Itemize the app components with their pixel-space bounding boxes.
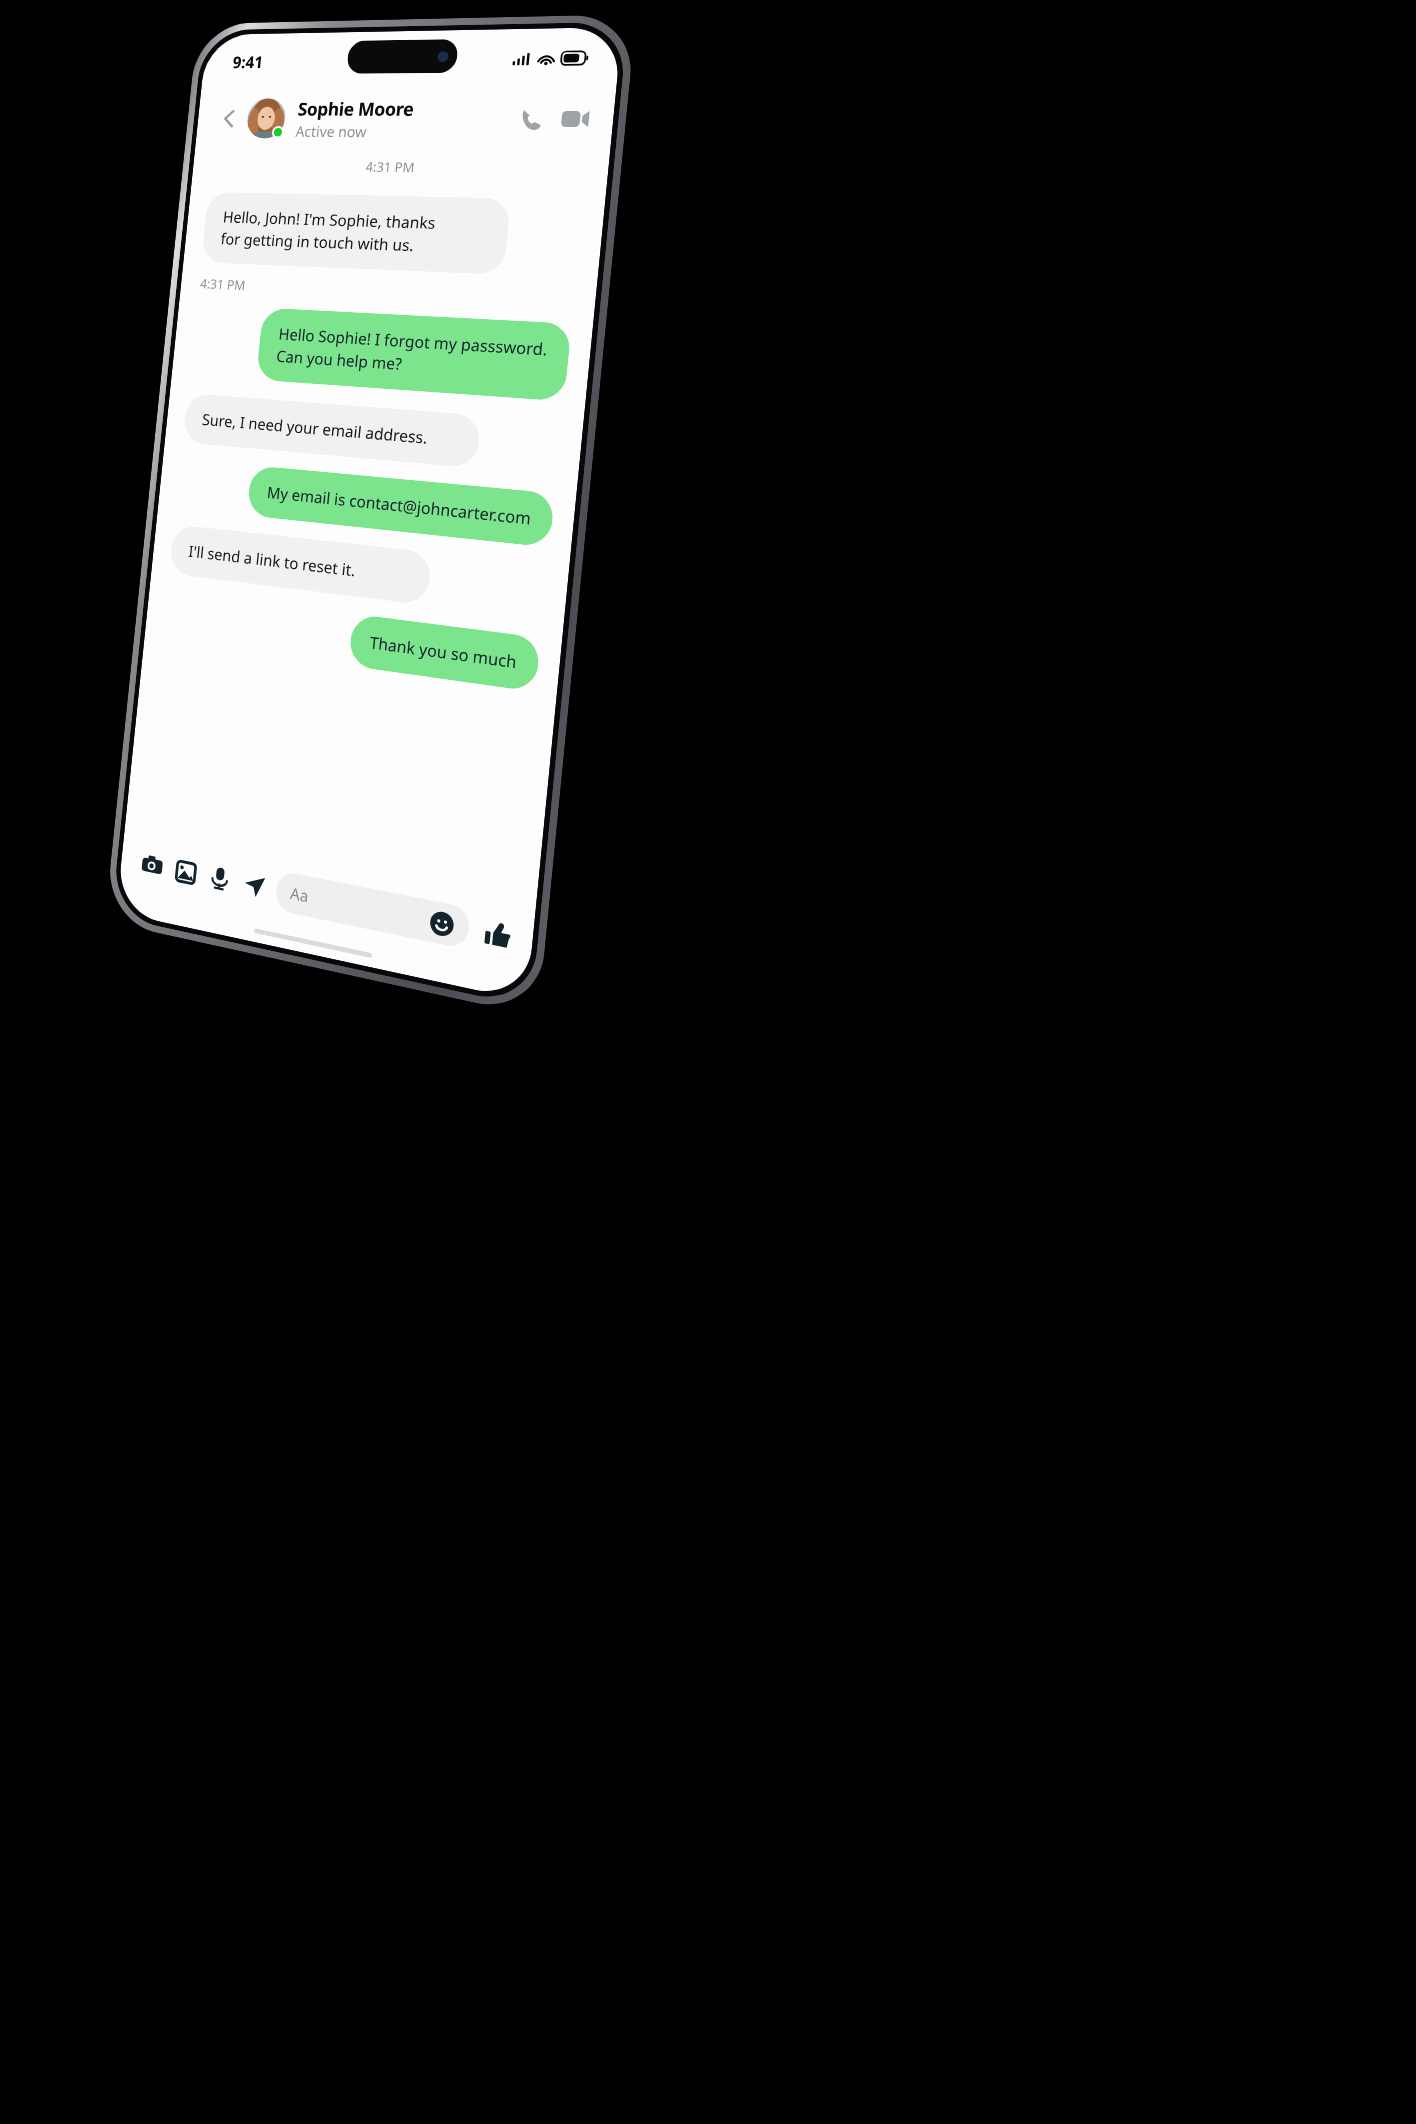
button[interactable]: Hello, John! I'm Sophie, thanks for gett… bbox=[201, 192, 511, 275]
staticText: 9:41 bbox=[232, 51, 264, 73]
staticText: Thank you so much bbox=[369, 631, 519, 673]
staticText: Aa bbox=[289, 882, 310, 908]
button[interactable]: Sure, I need your email address. bbox=[182, 393, 482, 468]
staticText: Hello, John! I'm Sophie, thanks for gett… bbox=[220, 206, 437, 257]
button[interactable]: Photos bbox=[167, 850, 204, 893]
button[interactable]: Like bbox=[478, 913, 517, 956]
button[interactable]: Voice message bbox=[200, 856, 239, 901]
button[interactable]: Send bbox=[235, 863, 273, 908]
button[interactable]: I'll send a link to reset it. bbox=[169, 524, 432, 606]
staticText: 4:31 PM bbox=[199, 275, 246, 294]
staticText: Active now bbox=[295, 121, 367, 141]
button[interactable]: Aa bbox=[274, 870, 471, 950]
button[interactable]: Camera bbox=[133, 843, 170, 887]
button[interactable]: Emoji bbox=[429, 910, 455, 938]
staticText: Hello Sophie! I forgot my passsword. Can… bbox=[275, 323, 549, 385]
button[interactable]: Back bbox=[211, 101, 247, 135]
staticText: I'll send a link to reset it. bbox=[188, 540, 357, 581]
button[interactable]: My email is contact@johncarter.com bbox=[246, 465, 555, 548]
button[interactable]: Sophie Moore bbox=[295, 96, 513, 142]
button[interactable]: Thank you so much bbox=[348, 614, 541, 692]
button[interactable]: Video call bbox=[553, 100, 597, 139]
button[interactable]: Hello Sophie! I forgot my passsword. Can… bbox=[256, 307, 572, 401]
button[interactable]: Call bbox=[509, 100, 552, 139]
staticText: Sophie Moore bbox=[297, 96, 415, 121]
staticText: 4:31 PM bbox=[365, 158, 416, 176]
staticText: Sure, I need your email address. bbox=[201, 409, 429, 449]
staticText: My email is contact@johncarter.com bbox=[266, 481, 533, 530]
